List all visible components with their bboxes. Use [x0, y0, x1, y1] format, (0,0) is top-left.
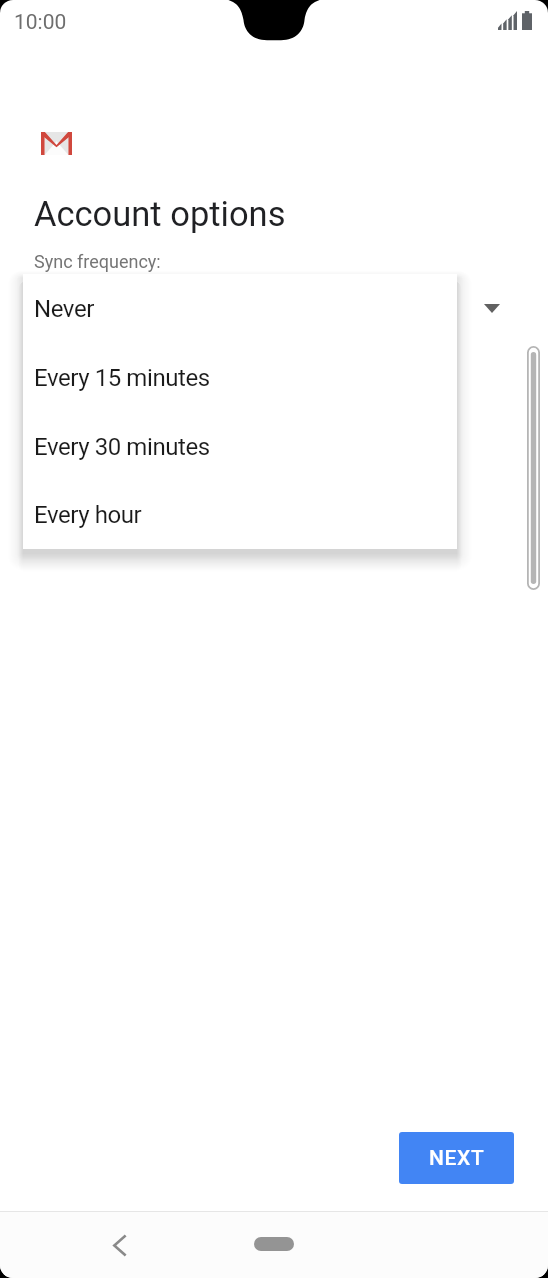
button[interactable]: Sync frequency dropdown — [472, 288, 512, 328]
staticText: Every hour — [34, 501, 142, 529]
staticText: Account options — [34, 194, 286, 234]
button[interactable]: Every 15 minutes — [23, 343, 457, 412]
button[interactable]: NEXT — [399, 1132, 514, 1184]
staticText: NEXT — [429, 1146, 485, 1171]
staticText: Never — [34, 295, 94, 323]
staticText: Every 30 minutes — [34, 433, 210, 461]
staticText: 10:00 — [14, 10, 67, 35]
staticText: Every 15 minutes — [34, 364, 210, 392]
button[interactable]: Back — [99, 1225, 139, 1265]
button[interactable]: Home — [243, 1229, 305, 1259]
button[interactable]: Every hour — [23, 481, 457, 549]
button[interactable]: Every 30 minutes — [23, 412, 457, 481]
button[interactable]: Never — [23, 274, 457, 343]
staticText: Sync frequency: — [34, 251, 161, 272]
